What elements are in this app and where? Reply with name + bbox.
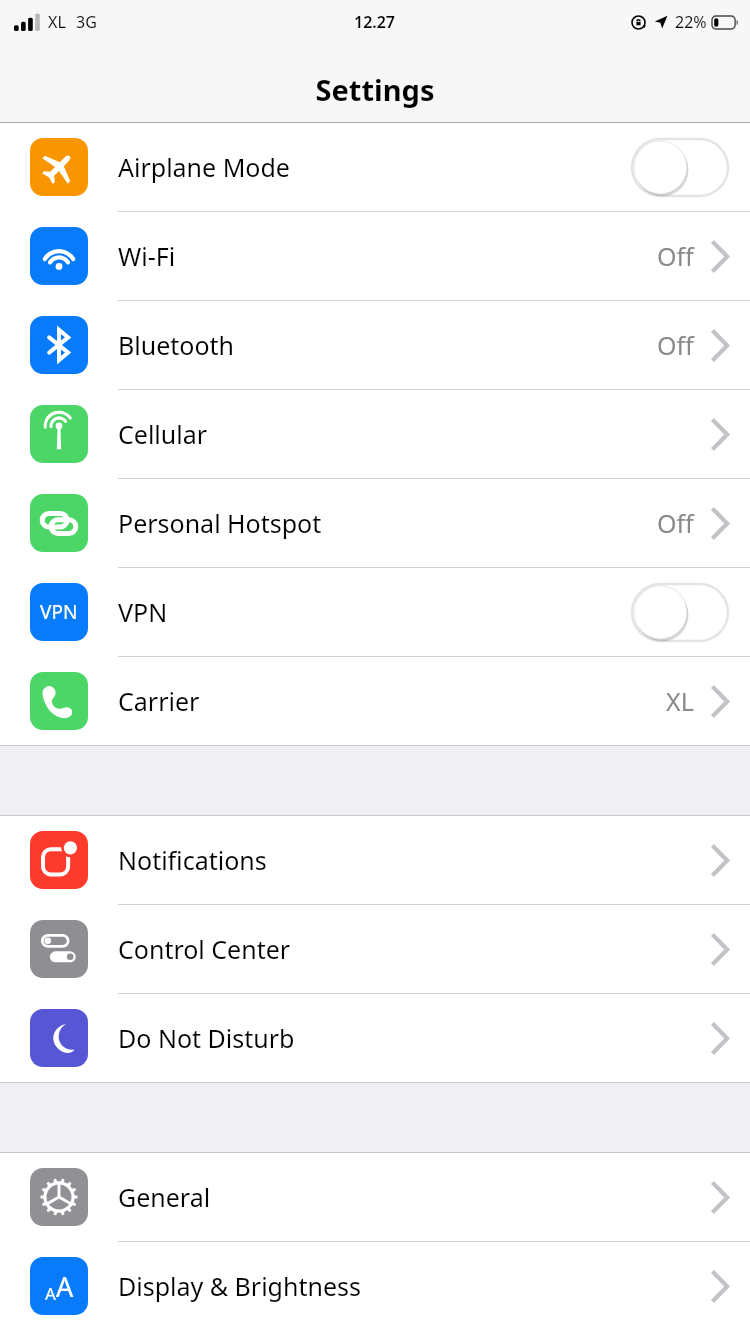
staticText: A	[45, 1282, 56, 1305]
button[interactable]: Cellular	[0, 390, 750, 479]
staticText: Carrier	[118, 684, 666, 718]
staticText: Settings	[0, 70, 750, 109]
staticText: Airplane Mode	[118, 150, 632, 184]
button[interactable]: Personal Hotspot	[0, 479, 750, 568]
staticText: 12.27	[354, 11, 396, 33]
staticText: XL	[666, 684, 694, 718]
staticText: VPN	[40, 599, 78, 625]
button[interactable]: Wi-Fi	[0, 212, 750, 301]
staticText: Wi-Fi	[118, 239, 657, 273]
staticText: XL	[48, 11, 66, 33]
staticText: Do Not Disturb	[118, 1021, 712, 1055]
button[interactable]: A	[0, 1242, 750, 1330]
staticText: Display & Brightness	[118, 1269, 712, 1303]
staticText: Off	[657, 328, 694, 362]
staticText: A	[56, 1268, 74, 1305]
staticText: Notifications	[118, 843, 712, 877]
staticText: General	[118, 1180, 712, 1214]
button[interactable]: Airplane Mode	[0, 123, 750, 212]
staticText: Personal Hotspot	[118, 506, 657, 540]
button[interactable]: General	[0, 1153, 750, 1242]
button[interactable]: VPN	[0, 568, 750, 657]
staticText: 3G	[76, 11, 97, 33]
button[interactable]: Carrier	[0, 657, 750, 745]
staticText: Control Center	[118, 932, 712, 966]
button[interactable]: Control Center	[0, 905, 750, 994]
staticText: Cellular	[118, 417, 712, 451]
staticText: VPN	[118, 595, 632, 629]
button[interactable]: Notifications	[0, 816, 750, 905]
button[interactable]: Do Not Disturb	[0, 994, 750, 1082]
staticText: Bluetooth	[118, 328, 657, 362]
button[interactable]: Bluetooth	[0, 301, 750, 390]
staticText: Off	[657, 506, 694, 540]
staticText: 22%	[675, 11, 707, 33]
staticText: Off	[657, 239, 694, 273]
